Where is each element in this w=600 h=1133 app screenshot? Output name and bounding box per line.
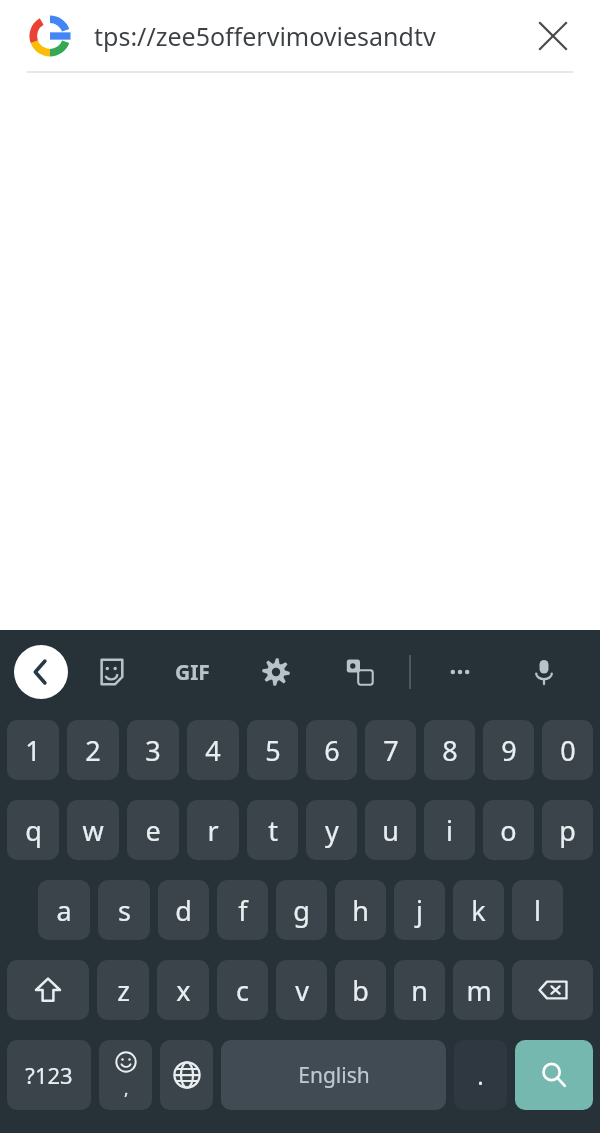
button[interactable]: Backspace <box>512 960 593 1020</box>
button[interactable]: t <box>247 800 298 860</box>
staticText: w <box>82 812 104 849</box>
staticText: i <box>446 812 453 849</box>
staticText: r <box>207 812 219 849</box>
staticText: b <box>352 972 369 1009</box>
staticText: s <box>118 892 131 929</box>
button[interactable]: 4 <box>187 720 239 780</box>
button[interactable]: g <box>276 880 327 940</box>
staticText: v <box>295 972 309 1009</box>
button[interactable]: 2 <box>67 720 119 780</box>
staticText: x <box>176 972 191 1009</box>
staticText: 5 <box>265 732 281 769</box>
staticText: 0 <box>560 732 576 769</box>
staticText: 9 <box>501 732 517 769</box>
button[interactable]: u <box>365 800 416 860</box>
button[interactable]: Settings <box>234 630 318 714</box>
button[interactable]: x <box>157 960 209 1020</box>
button[interactable]: More options <box>418 630 502 714</box>
button[interactable]: 5 <box>247 720 298 780</box>
staticText: j <box>416 892 423 929</box>
button[interactable]: 7 <box>365 720 416 780</box>
staticText: y <box>325 812 339 849</box>
button[interactable]: 8 <box>424 720 475 780</box>
button[interactable]: c <box>217 960 268 1020</box>
button[interactable]: Google <box>28 14 72 58</box>
button[interactable]: 3 <box>127 720 179 780</box>
button[interactable]: GIF <box>151 630 234 714</box>
button[interactable]: tps://zee5offervimoviesandtv <box>94 0 528 72</box>
staticText: z <box>117 972 130 1009</box>
staticText: l <box>534 892 541 929</box>
staticText: ?123 <box>25 1060 73 1090</box>
button[interactable]: English <box>221 1040 446 1110</box>
button[interactable]: Change keyboard <box>160 1040 213 1110</box>
button[interactable]: m <box>453 960 504 1020</box>
staticText: f <box>238 892 248 929</box>
staticText: g <box>293 892 310 929</box>
staticText: 7 <box>383 732 399 769</box>
button[interactable]: o <box>483 800 534 860</box>
button[interactable]: j <box>394 880 445 940</box>
button[interactable]: w <box>67 800 119 860</box>
button[interactable]: i <box>424 800 475 860</box>
button[interactable]: p <box>542 800 593 860</box>
button[interactable]: f <box>217 880 268 940</box>
button[interactable]: n <box>394 960 445 1020</box>
button[interactable]: Back <box>14 645 68 699</box>
button[interactable]: Shift <box>7 960 89 1020</box>
button[interactable]: Emoji <box>99 1040 152 1110</box>
staticText: English <box>298 1061 370 1090</box>
staticText: k <box>471 892 486 929</box>
button[interactable]: Voice input <box>502 630 586 714</box>
staticText: q <box>25 812 42 849</box>
button[interactable]: Search <box>515 1040 593 1110</box>
button[interactable]: z <box>97 960 149 1020</box>
staticText: 1 <box>25 732 41 769</box>
button[interactable]: l <box>512 880 563 940</box>
staticText: p <box>559 812 576 849</box>
staticText: a <box>56 892 72 929</box>
staticText: c <box>236 972 249 1009</box>
button[interactable]: Clear <box>528 11 578 61</box>
button[interactable]: r <box>187 800 239 860</box>
button[interactable]: Stickers <box>68 630 151 714</box>
button[interactable]: v <box>276 960 327 1020</box>
button[interactable]: k <box>453 880 504 940</box>
staticText: d <box>175 892 192 929</box>
button[interactable]: b <box>335 960 386 1020</box>
button[interactable]: Translate <box>318 630 402 714</box>
staticText: u <box>382 812 399 849</box>
button[interactable]: 1 <box>7 720 59 780</box>
staticText: 6 <box>324 732 340 769</box>
button[interactable]: a <box>38 880 90 940</box>
button[interactable]: y <box>306 800 357 860</box>
button[interactable]: 9 <box>483 720 534 780</box>
button[interactable]: q <box>7 800 59 860</box>
staticText: 4 <box>205 732 221 769</box>
staticText: . <box>477 1059 484 1092</box>
staticText: 2 <box>85 732 101 769</box>
staticText: m <box>466 972 492 1009</box>
staticText: h <box>352 892 369 929</box>
button[interactable]: 6 <box>306 720 357 780</box>
staticText: e <box>145 812 161 849</box>
staticText: 3 <box>145 732 161 769</box>
staticText: GIF <box>175 658 210 687</box>
staticText: tps://zee5offervimoviesandtv <box>94 19 436 53</box>
button[interactable]: s <box>98 880 150 940</box>
staticText: 8 <box>442 732 458 769</box>
button[interactable]: h <box>335 880 386 940</box>
button[interactable]: . <box>454 1040 507 1110</box>
staticText: , <box>124 1077 129 1100</box>
staticText: t <box>268 812 278 849</box>
button[interactable]: d <box>158 880 209 940</box>
button[interactable]: ?123 <box>7 1040 91 1110</box>
button[interactable]: e <box>127 800 179 860</box>
staticText: n <box>411 972 428 1009</box>
staticText: o <box>500 812 517 849</box>
button[interactable]: 0 <box>542 720 593 780</box>
